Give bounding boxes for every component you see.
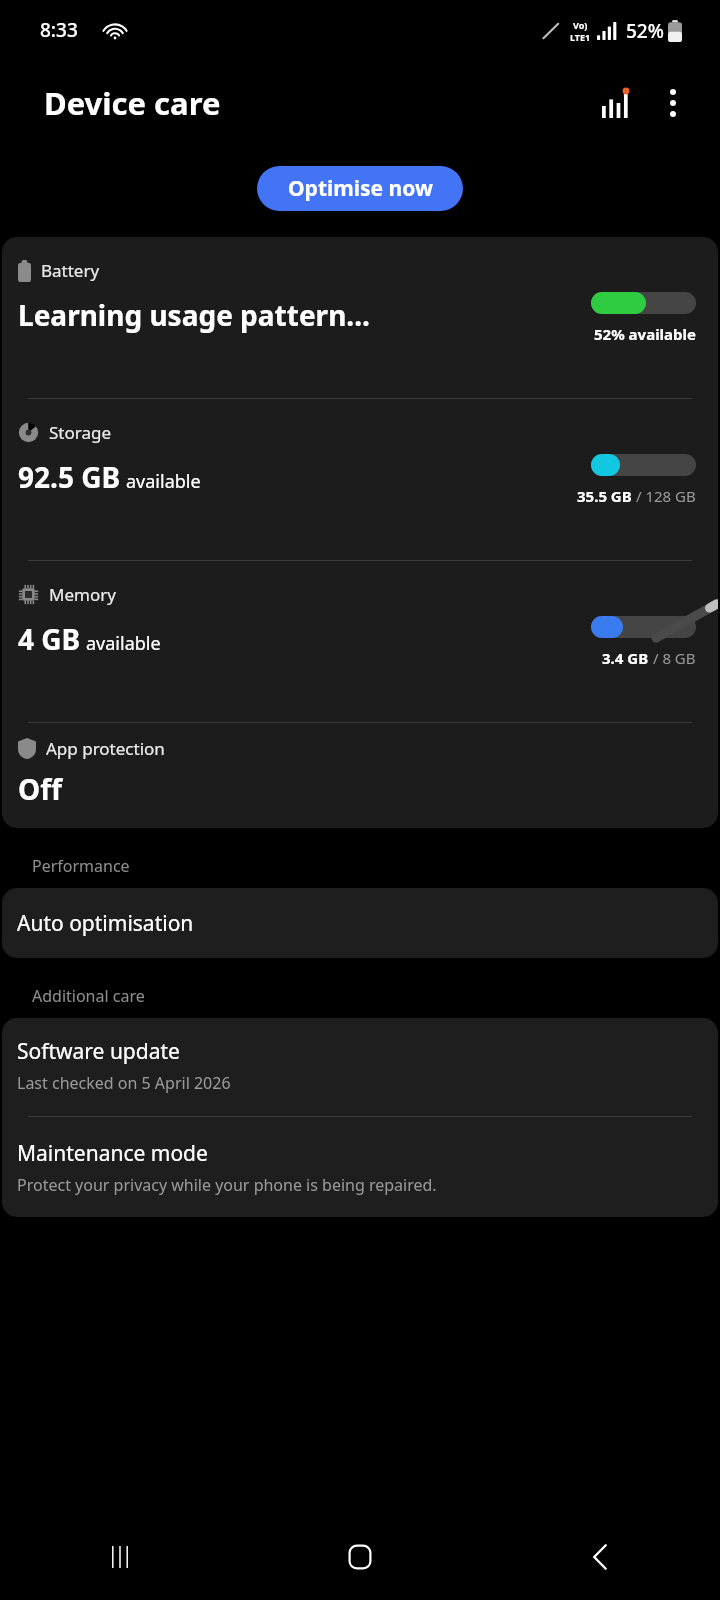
button[interactable]: Optimise now [257, 166, 463, 211]
button[interactable]: Software update [2, 1018, 718, 1116]
staticText: Battery [41, 259, 100, 282]
staticText: 3.4 GB [602, 648, 649, 668]
button[interactable]: Maintenance mode [2, 1117, 718, 1217]
staticText: / 128 GB [632, 486, 696, 506]
staticText: Device care [44, 82, 221, 124]
staticText: Memory [49, 583, 116, 606]
button[interactable]: Home [323, 1520, 397, 1594]
staticText: Learning usage pattern... [18, 296, 370, 334]
button[interactable]: App protection [2, 723, 718, 828]
staticText: 52% [626, 18, 664, 44]
button[interactable]: Storage [2, 399, 718, 560]
staticText: Storage [49, 421, 112, 444]
staticText: Last checked on 5 April 2026 [17, 1072, 231, 1094]
button[interactable]: Usage history [592, 78, 642, 128]
staticText: App protection [46, 737, 165, 760]
button[interactable]: Recents [83, 1520, 157, 1594]
staticText: LTE1 [570, 31, 591, 43]
button[interactable]: More options [648, 78, 698, 128]
staticText: Vo) [573, 19, 588, 31]
staticText: Software update [17, 1037, 180, 1066]
button[interactable]: Auto optimisation [2, 888, 718, 958]
staticText: 35.5 GB [577, 486, 632, 506]
staticText: Optimise now [288, 174, 433, 203]
button[interactable]: Memory [2, 561, 718, 722]
button[interactable]: Back [563, 1520, 637, 1594]
button[interactable]: Battery [2, 237, 718, 398]
staticText: Protect your privacy while your phone is… [17, 1174, 437, 1196]
staticText: / 8 GB [649, 648, 696, 668]
staticText: Maintenance mode [17, 1139, 208, 1168]
staticText: 52% available [594, 324, 696, 344]
staticText: available [126, 469, 201, 494]
staticText: 8:33 [40, 17, 78, 43]
staticText: 92.5 GB [18, 458, 121, 496]
staticText: Auto optimisation [17, 909, 194, 938]
staticText: Additional care [32, 985, 145, 1007]
staticText: Off [18, 770, 62, 808]
staticText: available [86, 631, 161, 656]
staticText: Performance [32, 855, 130, 877]
staticText: 4 GB [18, 620, 81, 658]
